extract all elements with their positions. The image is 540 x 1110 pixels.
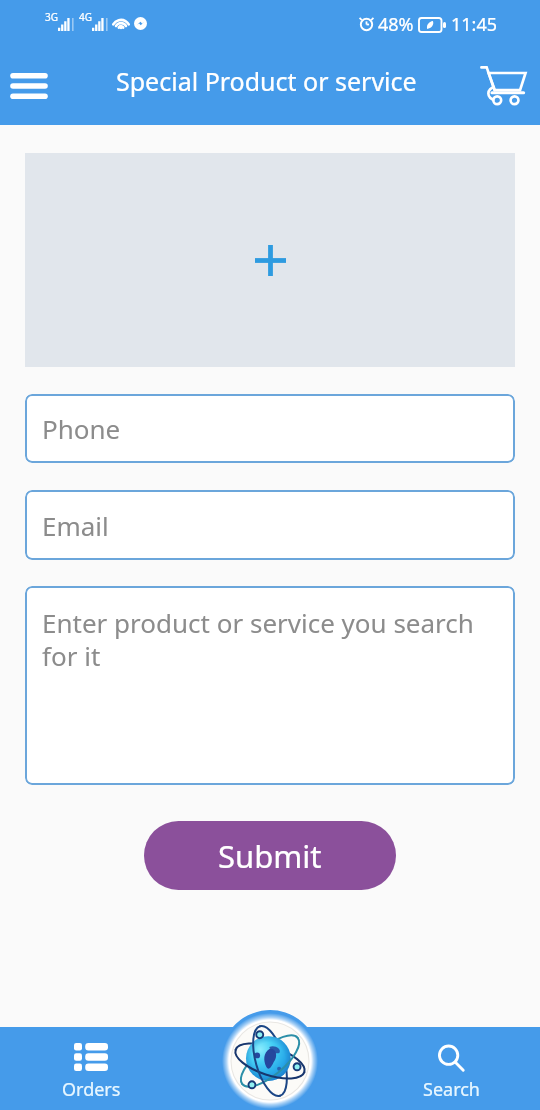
button[interactable]: Home (222, 1013, 318, 1109)
button[interactable]: Menu (5, 62, 53, 110)
staticText: Phone (42, 411, 121, 446)
button[interactable]: Phone (25, 394, 515, 463)
button[interactable]: Submit (144, 821, 396, 890)
staticText: Enter product or service you search for … (42, 605, 493, 674)
button[interactable]: Enter product or service you search for … (25, 586, 515, 785)
staticText: 4G (79, 10, 92, 24)
staticText: 48% (378, 12, 414, 37)
staticText: Submit (218, 835, 322, 877)
staticText: Orders (62, 1077, 121, 1102)
button[interactable]: Email (25, 490, 515, 560)
staticText: 11:45 (451, 12, 498, 37)
button[interactable]: Shopping cart (474, 55, 532, 113)
button[interactable]: Orders (35, 1000, 147, 1110)
staticText: Email (42, 508, 109, 543)
staticText: Special Product or service (116, 64, 417, 98)
button[interactable]: Add photo (25, 153, 515, 367)
staticText: 3G (45, 10, 58, 24)
button[interactable]: Search (395, 1000, 507, 1110)
staticText: Search (423, 1077, 480, 1102)
